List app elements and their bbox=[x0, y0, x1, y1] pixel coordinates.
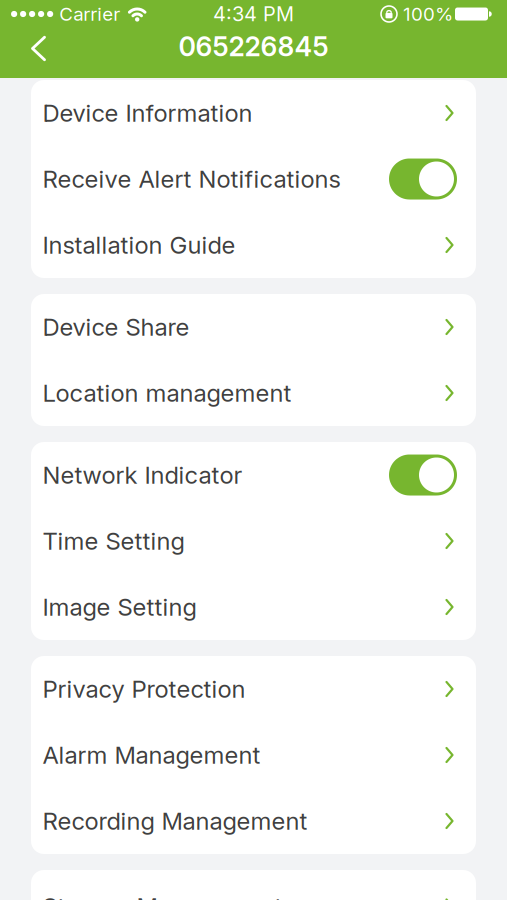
staticText: Device Share bbox=[42, 313, 189, 341]
staticText: Installation Guide bbox=[42, 231, 235, 259]
button[interactable]: Device Share bbox=[31, 294, 476, 360]
button[interactable]: Device Information bbox=[31, 80, 476, 146]
staticText: 4:34 PM bbox=[213, 2, 294, 26]
button[interactable]: Location management bbox=[31, 360, 476, 426]
staticText: Receive Alert Notifications bbox=[42, 165, 340, 193]
staticText: Device Information bbox=[42, 99, 252, 127]
button[interactable]: Receive Alert Notifications bbox=[31, 146, 476, 212]
button[interactable]: Network Indicator bbox=[31, 442, 476, 508]
staticText: Location management bbox=[42, 379, 291, 407]
staticText: Alarm Management bbox=[42, 741, 260, 769]
staticText: 100% bbox=[403, 3, 453, 25]
button[interactable]: Privacy Protection bbox=[31, 656, 476, 722]
staticText: Storage Management bbox=[42, 892, 282, 900]
staticText: Time Setting bbox=[42, 527, 184, 555]
button[interactable]: Installation Guide bbox=[31, 212, 476, 278]
button[interactable]: Storage Management bbox=[31, 870, 476, 900]
staticText: Privacy Protection bbox=[42, 675, 245, 703]
staticText: Carrier bbox=[59, 3, 120, 25]
staticText: Network Indicator bbox=[42, 461, 242, 489]
button[interactable]: Image Setting bbox=[31, 574, 476, 640]
button[interactable]: Recording Management bbox=[31, 788, 476, 854]
staticText: Recording Management bbox=[42, 807, 307, 835]
button[interactable]: Time Setting bbox=[31, 508, 476, 574]
button[interactable]: Alarm Management bbox=[31, 722, 476, 788]
staticText: 065226845 bbox=[178, 31, 328, 62]
button[interactable]: Back bbox=[0, 32, 46, 61]
staticText: Image Setting bbox=[42, 593, 196, 621]
